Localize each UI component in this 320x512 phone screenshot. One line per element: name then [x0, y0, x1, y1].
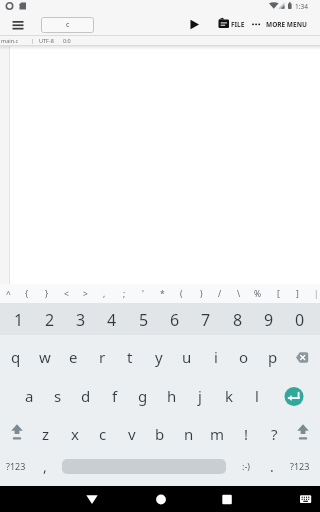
- button[interactable]: a: [15, 377, 43, 415]
- button[interactable]: i: [202, 337, 230, 377]
- button[interactable]: m: [203, 416, 231, 452]
- button[interactable]: [185, 15, 205, 35]
- staticText: c: [99, 424, 107, 444]
- staticText: FILE: [231, 20, 245, 29]
- button[interactable]: z: [32, 416, 60, 452]
- button[interactable]: 2: [34, 304, 65, 336]
- button[interactable]: b: [146, 416, 174, 452]
- staticText: u: [182, 347, 192, 367]
- staticText: (: [180, 288, 183, 300]
- button[interactable]: .: [260, 451, 284, 481]
- button[interactable]: 1: [3, 304, 34, 336]
- button[interactable]: :-): [233, 451, 259, 481]
- button[interactable]: [: [269, 284, 287, 303]
- button[interactable]: ;: [115, 284, 133, 303]
- button[interactable]: e: [59, 337, 87, 377]
- button[interactable]: ,: [32, 451, 58, 481]
- staticText: l: [255, 386, 259, 406]
- button[interactable]: 9: [253, 304, 284, 336]
- button[interactable]: [8, 15, 28, 35]
- staticText: <: [64, 288, 69, 300]
- button[interactable]: ?123: [285, 451, 315, 481]
- button[interactable]: ): [192, 284, 210, 303]
- button[interactable]: ^: [0, 284, 17, 303]
- staticText: v: [128, 424, 136, 444]
- button[interactable]: 5: [128, 304, 159, 336]
- button[interactable]: n: [175, 416, 203, 452]
- button[interactable]: y: [145, 337, 173, 377]
- button[interactable]: w: [31, 337, 59, 377]
- button[interactable]: h: [158, 377, 186, 415]
- button[interactable]: 3: [65, 304, 96, 336]
- button[interactable]: [294, 488, 318, 510]
- staticText: >: [83, 288, 88, 300]
- button[interactable]: ?123: [1, 451, 31, 481]
- staticText: 4: [107, 309, 117, 331]
- staticText: a: [25, 386, 34, 406]
- button[interactable]: [78, 488, 106, 510]
- button[interactable]: ,: [95, 284, 113, 303]
- button[interactable]: l: [243, 377, 271, 415]
- button[interactable]: (: [172, 284, 190, 303]
- button[interactable]: ?: [260, 416, 288, 452]
- button[interactable]: \: [230, 284, 248, 303]
- button[interactable]: s: [44, 377, 72, 415]
- button[interactable]: 7: [190, 304, 221, 336]
- button[interactable]: *: [153, 284, 171, 303]
- button[interactable]: UTF-8: [36, 36, 56, 45]
- button[interactable]: /: [211, 284, 229, 303]
- staticText: q: [11, 347, 21, 367]
- button[interactable]: 4: [96, 304, 127, 336]
- button[interactable]: [215, 15, 247, 34]
- button[interactable]: [288, 338, 316, 378]
- button[interactable]: [289, 417, 317, 453]
- button[interactable]: [213, 488, 241, 510]
- button[interactable]: %: [249, 284, 267, 303]
- button[interactable]: d: [72, 377, 100, 415]
- button[interactable]: }: [38, 284, 56, 303]
- staticText: 5: [139, 309, 149, 331]
- staticText: UTF-8: [39, 37, 54, 44]
- button[interactable]: 0:0: [60, 36, 74, 45]
- staticText: p: [268, 347, 278, 367]
- button[interactable]: >: [76, 284, 94, 303]
- staticText: *: [160, 288, 165, 300]
- button[interactable]: o: [230, 337, 258, 377]
- button[interactable]: [280, 377, 308, 415]
- button[interactable]: t: [116, 337, 144, 377]
- button[interactable]: [147, 488, 175, 510]
- button[interactable]: 0: [284, 304, 315, 336]
- button[interactable]: main.c: [0, 36, 20, 45]
- staticText: ^: [6, 288, 11, 300]
- staticText: \: [237, 288, 241, 300]
- staticText: j: [198, 386, 202, 406]
- button[interactable]: c: [89, 416, 117, 452]
- button[interactable]: f: [101, 377, 129, 415]
- button[interactable]: [250, 15, 314, 34]
- staticText: 0:0: [63, 37, 71, 44]
- button[interactable]: ]: [288, 284, 306, 303]
- button[interactable]: [3, 417, 31, 453]
- button[interactable]: p: [259, 337, 287, 377]
- button[interactable]: q: [2, 337, 30, 377]
- button[interactable]: <: [57, 284, 75, 303]
- button[interactable]: j: [186, 377, 214, 415]
- staticText: [: [277, 288, 280, 300]
- button[interactable]: 8: [222, 304, 253, 336]
- button[interactable]: x: [61, 416, 89, 452]
- staticText: :-): [242, 460, 251, 472]
- button[interactable]: c: [41, 17, 94, 33]
- button[interactable]: g: [129, 377, 157, 415]
- button[interactable]: ': [134, 284, 152, 303]
- button[interactable]: !: [232, 416, 260, 452]
- button[interactable]: v: [118, 416, 146, 452]
- button[interactable]: {: [18, 284, 36, 303]
- staticText: ]: [296, 288, 299, 300]
- button[interactable]: r: [88, 337, 116, 377]
- button[interactable]: 6: [159, 304, 190, 336]
- staticText: 6: [170, 309, 180, 331]
- button[interactable]: u: [173, 337, 201, 377]
- button[interactable]: k: [215, 377, 243, 415]
- staticText: ?123: [6, 460, 26, 472]
